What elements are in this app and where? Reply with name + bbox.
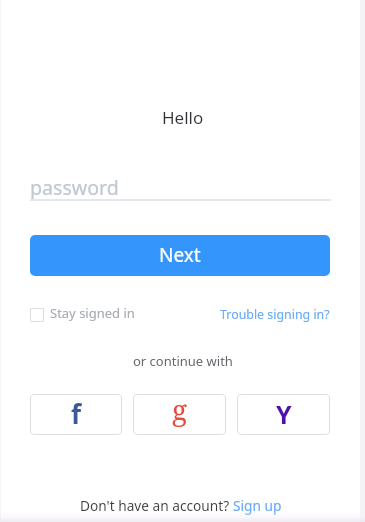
staticText: Hello (162, 106, 204, 129)
staticText: Stay signed in (50, 304, 135, 322)
staticText: password (30, 174, 119, 201)
staticText: Next (159, 242, 201, 268)
staticText: f (71, 396, 82, 431)
button[interactable]: Password field (30, 166, 331, 203)
staticText: Y (276, 397, 292, 431)
staticText: Trouble signing in? (220, 306, 330, 323)
staticText: or continue with (133, 352, 233, 370)
staticText: Sign up (233, 496, 282, 515)
button[interactable]: Next (30, 235, 330, 276)
button[interactable]: Trouble signing in? (220, 306, 330, 323)
staticText: g (172, 394, 188, 428)
button[interactable]: Sign in with Google (133, 394, 226, 435)
button[interactable]: Sign up (233, 496, 282, 515)
button[interactable]: Stay signed in (30, 304, 135, 322)
button[interactable]: Sign in with Yahoo (237, 394, 330, 435)
button[interactable]: Sign in with Facebook (30, 394, 122, 435)
staticText: Don't have an account? (80, 496, 233, 515)
